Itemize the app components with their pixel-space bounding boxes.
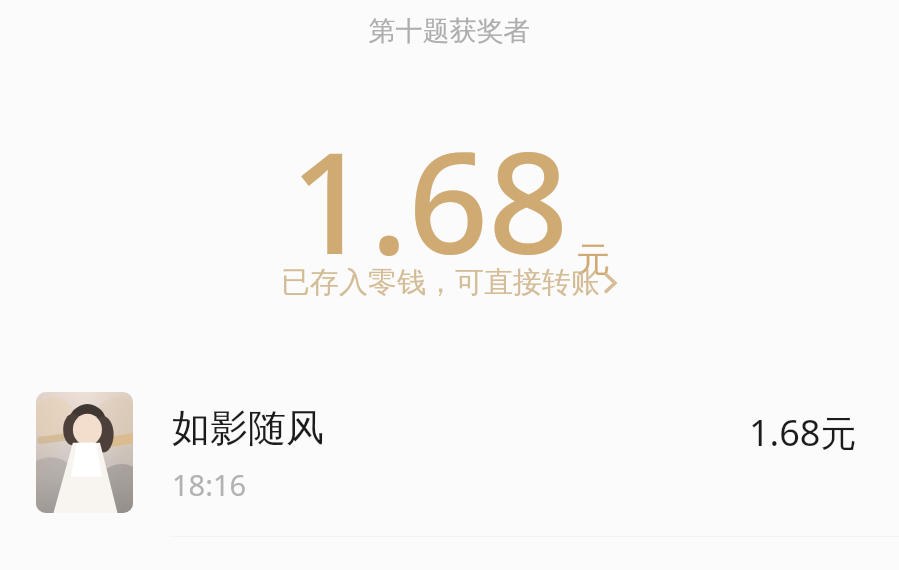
button[interactable]: 已存入零钱，可直接转账 bbox=[275, 260, 624, 305]
staticText: 1.68元 bbox=[749, 408, 857, 457]
other: Contact avatar bbox=[36, 392, 133, 513]
staticText: 第十题获奖者 bbox=[0, 14, 899, 48]
button[interactable]: Contact avatar bbox=[0, 372, 899, 536]
staticText: 如影随风 bbox=[172, 404, 324, 452]
staticText: 18:16 bbox=[172, 465, 247, 504]
staticText: 已存入零钱，可直接转账 bbox=[281, 264, 600, 301]
staticText: 元 bbox=[576, 238, 610, 281]
staticText: 1.68 bbox=[290, 104, 569, 295]
